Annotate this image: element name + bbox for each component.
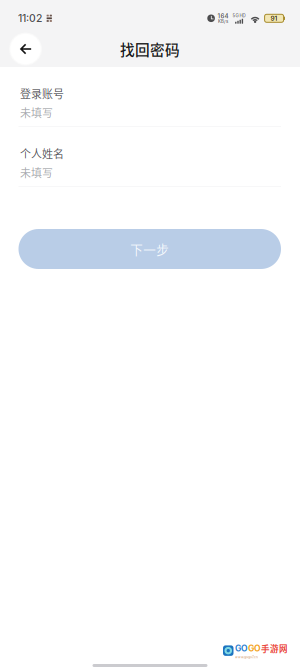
staticText: 未填写 (20, 165, 53, 180)
staticText: KB/s (218, 19, 228, 24)
button[interactable]: 登录账号 (18, 87, 281, 127)
staticText: 164 (218, 12, 229, 20)
staticText: 91 (271, 14, 278, 22)
button[interactable]: 个人姓名 (18, 147, 281, 187)
staticText: 个人姓名 (20, 146, 64, 161)
staticText: 11:02 (18, 12, 42, 25)
staticText: 下一步 (130, 240, 169, 258)
staticText: 未填写 (20, 105, 53, 120)
button[interactable]: 下一步 (18, 229, 281, 269)
staticText: 5G HD (233, 13, 246, 18)
staticText: 找回密码 (120, 38, 180, 60)
staticText: GO (248, 643, 261, 654)
staticText: 手游网 (261, 642, 288, 655)
staticText: GO (235, 643, 248, 654)
button[interactable]: Back (8, 32, 42, 66)
staticText: 登录账号 (20, 86, 64, 101)
staticText: www.gogo7.cn (235, 655, 258, 659)
